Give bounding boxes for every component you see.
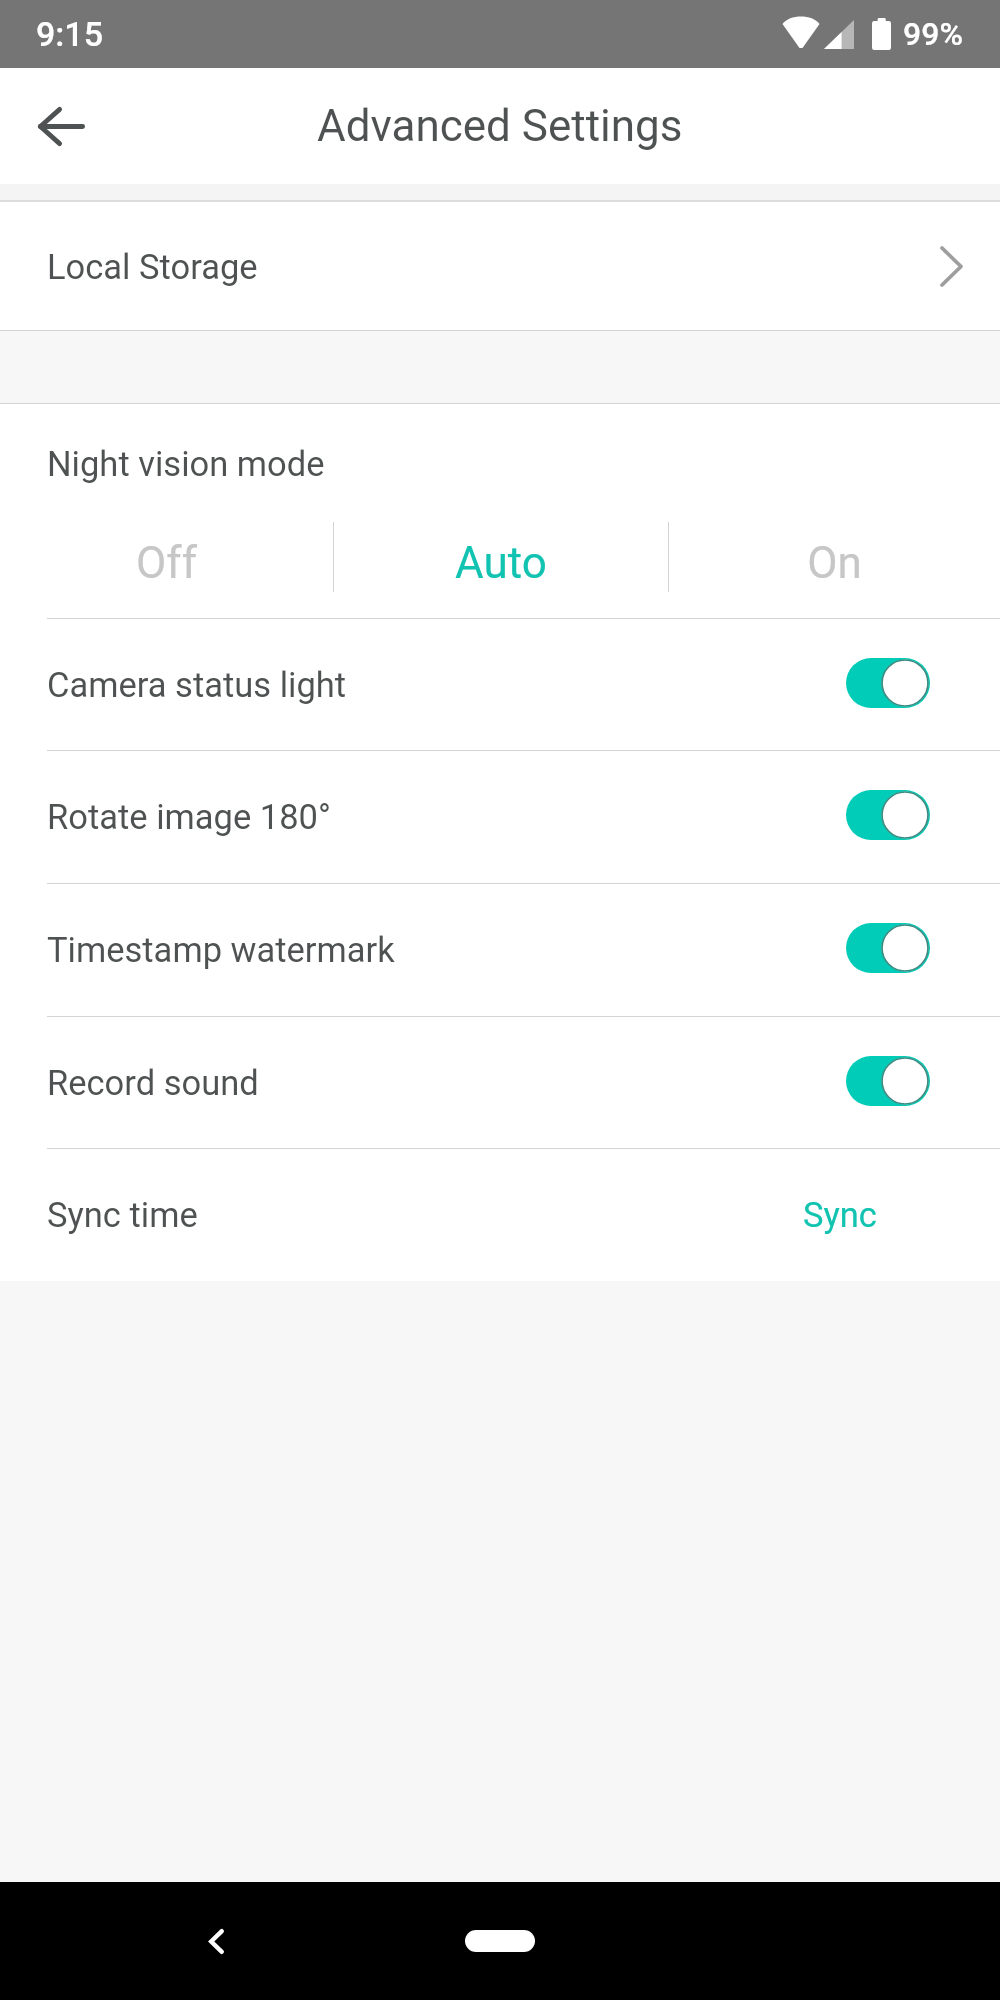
button[interactable]: Sync time bbox=[0, 1149, 1000, 1281]
button[interactable]: Rotate image 180° bbox=[0, 751, 1000, 883]
staticText: Rotate image 180° bbox=[47, 797, 331, 837]
staticText: Advanced Settings bbox=[317, 100, 683, 152]
button[interactable]: Timestamp watermark bbox=[0, 884, 1000, 1016]
button[interactable]: Camera status light bbox=[0, 619, 1000, 750]
staticText: Off bbox=[136, 537, 197, 589]
staticText: Auto bbox=[455, 537, 547, 589]
button[interactable]: Auto bbox=[334, 508, 668, 618]
button[interactable]: Off bbox=[0, 508, 333, 618]
button[interactable]: Toggle Rotate image 180° bbox=[830, 774, 946, 856]
staticText: 99% bbox=[903, 15, 963, 53]
button[interactable]: Record sound bbox=[0, 1017, 1000, 1148]
button[interactable]: Back bbox=[26, 91, 96, 161]
staticText: Timestamp watermark bbox=[47, 930, 395, 970]
staticText: Sync bbox=[803, 1195, 877, 1235]
button[interactable]: Toggle Camera status light bbox=[830, 642, 946, 724]
button[interactable]: Toggle Timestamp watermark bbox=[830, 907, 946, 989]
button[interactable]: Home bbox=[465, 1930, 535, 1952]
button[interactable]: Back bbox=[186, 1911, 246, 1971]
staticText: On bbox=[807, 537, 862, 589]
button[interactable]: Toggle Record sound bbox=[830, 1040, 946, 1122]
staticText: Local Storage bbox=[47, 247, 258, 287]
staticText: 9:15 bbox=[36, 14, 103, 54]
button[interactable]: Local Storage bbox=[0, 202, 1000, 330]
staticText: Night vision mode bbox=[47, 444, 325, 484]
button[interactable]: On bbox=[668, 508, 1000, 618]
staticText: Sync time bbox=[47, 1195, 198, 1235]
staticText: Camera status light bbox=[47, 665, 347, 705]
staticText: Record sound bbox=[47, 1063, 259, 1103]
